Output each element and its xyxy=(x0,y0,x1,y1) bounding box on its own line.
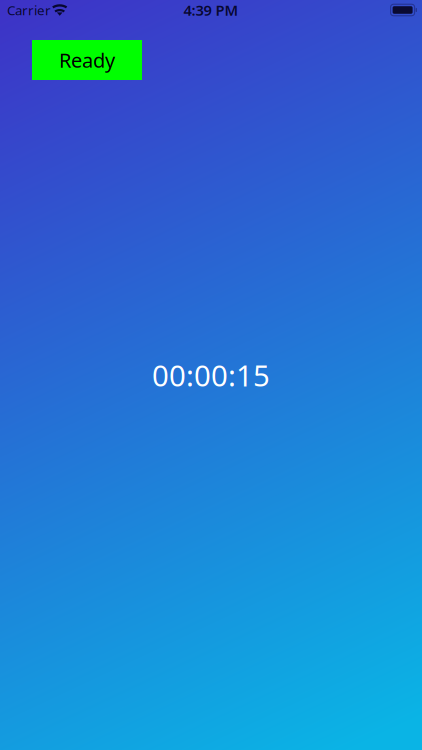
staticText: Ready xyxy=(59,47,115,73)
staticText: 00:00:15 xyxy=(152,355,270,394)
staticText: 4:39 PM xyxy=(183,0,238,20)
button[interactable]: Ready xyxy=(32,40,142,80)
staticText: Carrier xyxy=(7,1,51,19)
